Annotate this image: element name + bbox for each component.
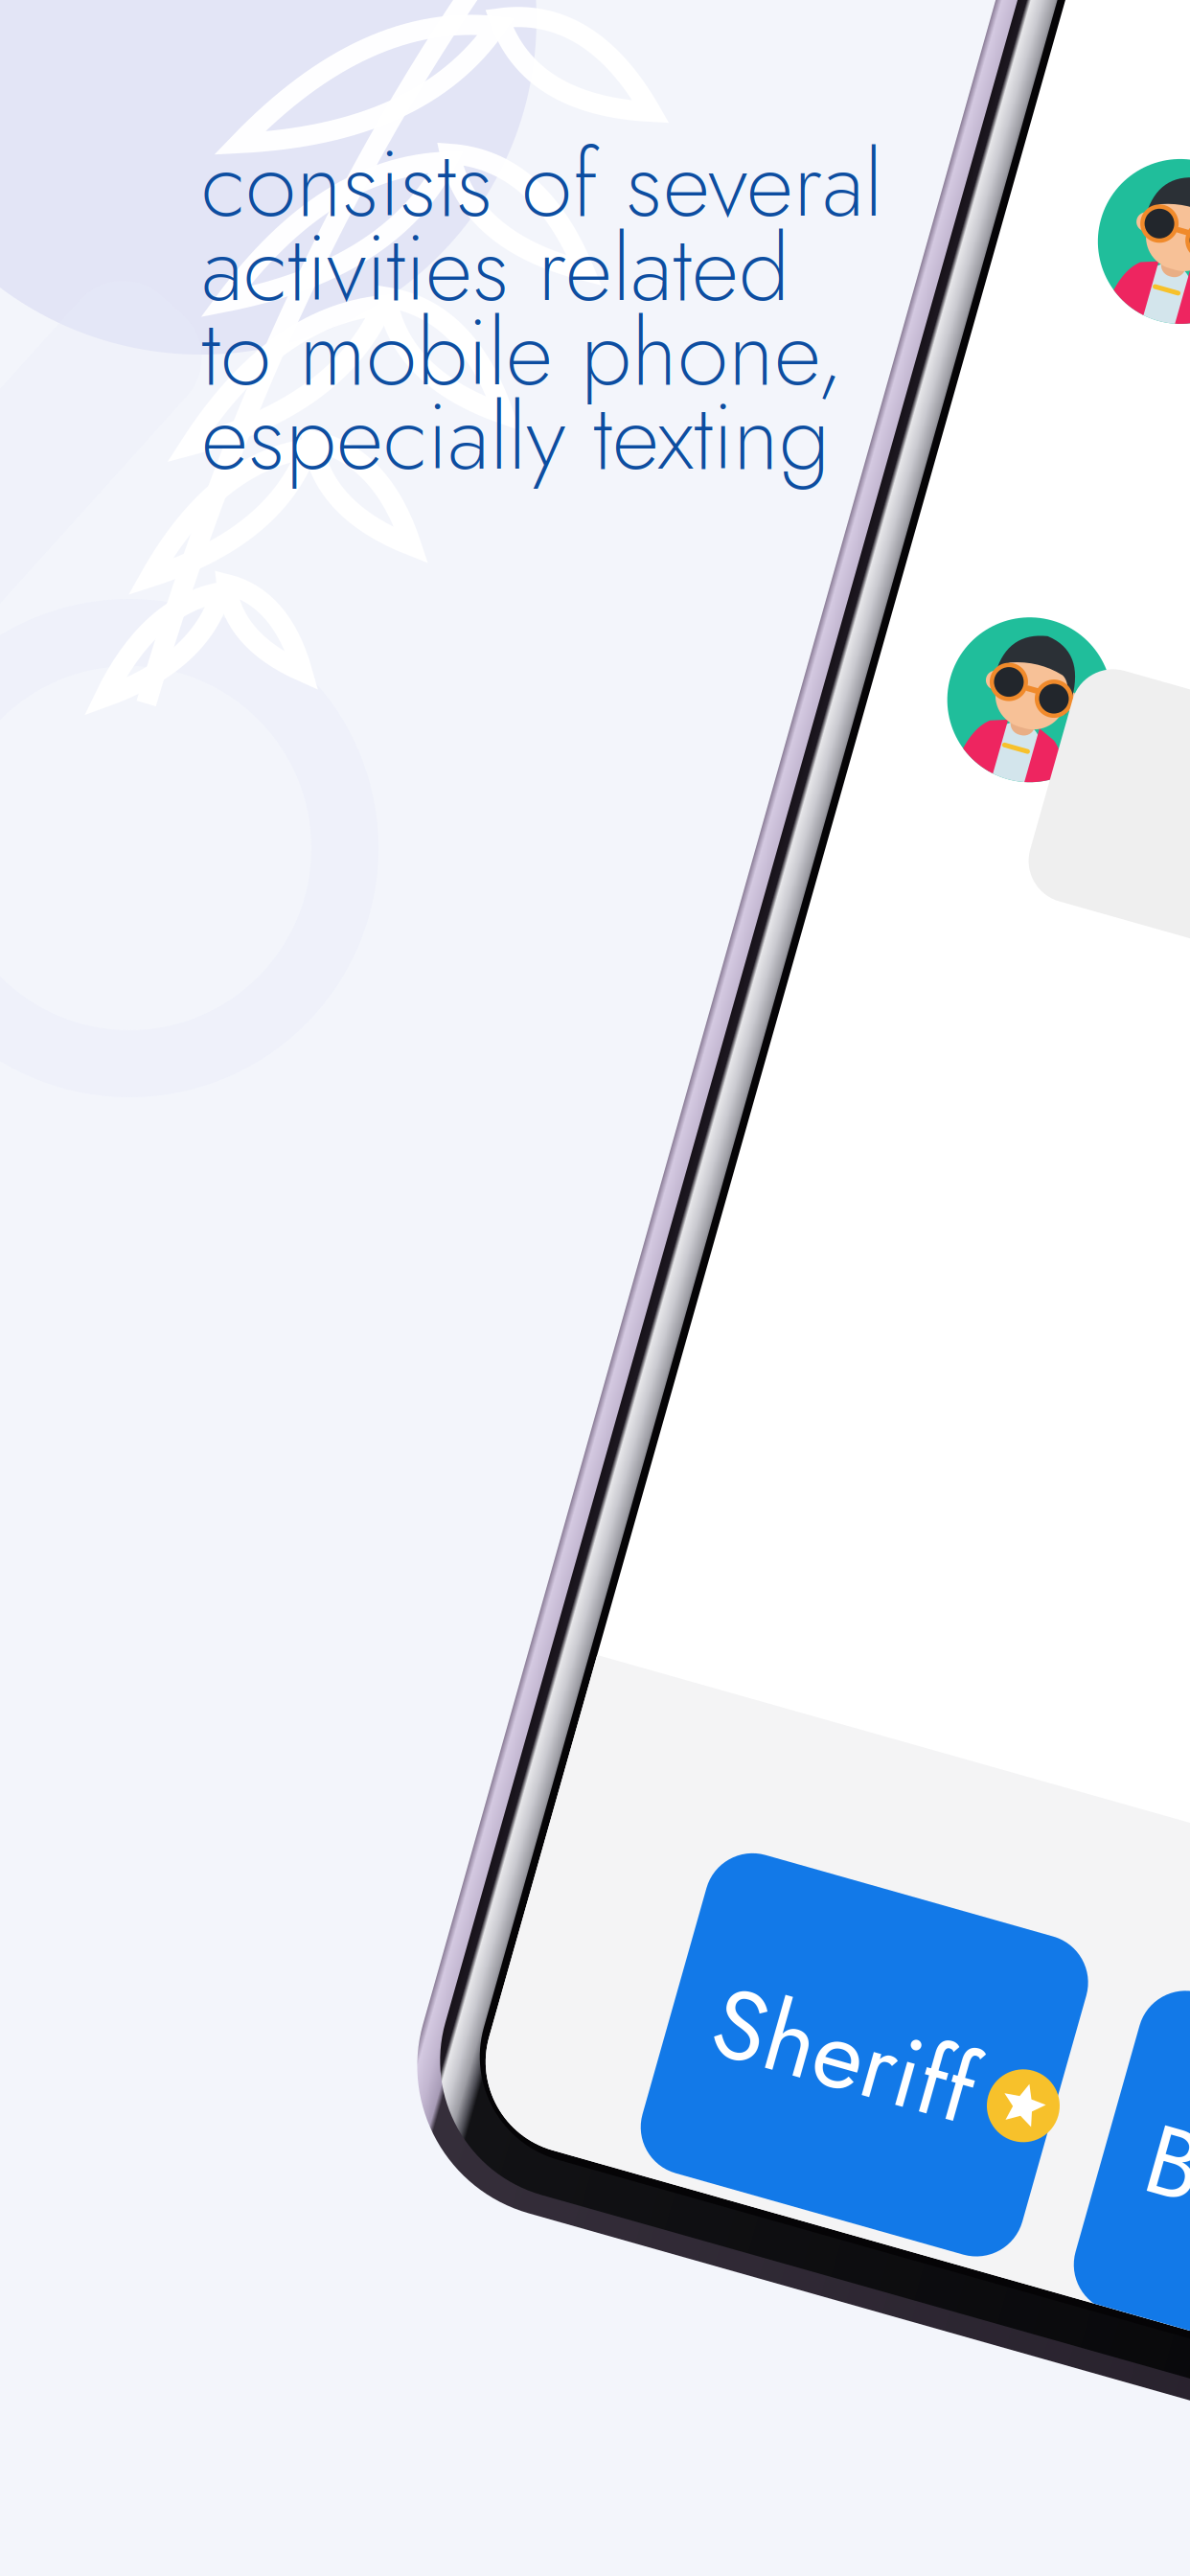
staticText: consists of several (201, 117, 882, 250)
staticText: to mobile phone, (201, 286, 843, 419)
staticText: activities related (201, 202, 790, 334)
staticText: Sheriff (974, 2064, 1190, 2204)
button[interactable]: Sheriff (930, 1963, 1190, 2293)
staticText: especially texting (201, 370, 830, 503)
